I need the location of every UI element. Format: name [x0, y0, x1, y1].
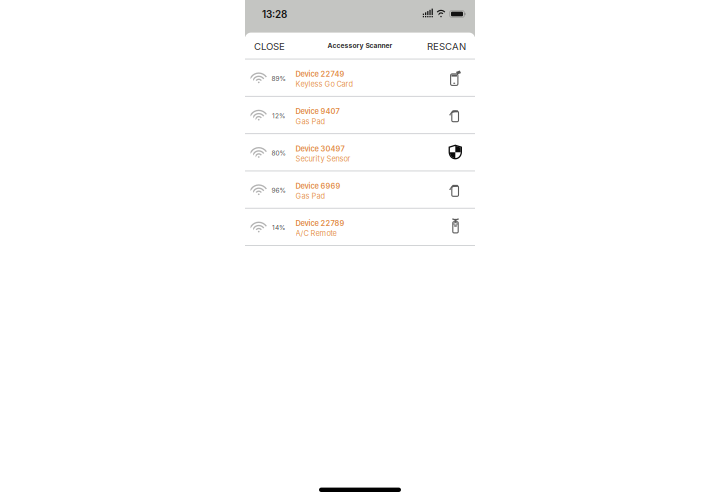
staticText: RESCAN	[427, 41, 466, 52]
staticText: 14%	[272, 224, 285, 232]
staticText: 96%	[271, 186, 285, 194]
button[interactable]: 14%	[245, 209, 475, 245]
staticText: 80%	[271, 149, 285, 157]
staticText: 89%	[271, 74, 285, 82]
staticText: Security Sensor	[295, 154, 350, 163]
staticText: Gas Pad	[295, 117, 325, 126]
button[interactable]: 80%	[245, 134, 475, 170]
staticText: Accessory Scanner	[327, 42, 392, 50]
staticText: Device 6969	[295, 181, 340, 190]
staticText: A/C Remote	[295, 229, 336, 238]
staticText: Device 22789	[295, 219, 344, 228]
staticText: 12%	[272, 112, 285, 120]
button[interactable]: 89%	[245, 59, 475, 96]
staticText: Device 22749	[295, 70, 344, 79]
staticText: Keyless Go Card	[295, 80, 353, 89]
staticText: 13:28	[262, 8, 287, 20]
button[interactable]: CLOSE	[248, 35, 291, 56]
staticText: Device 30497	[295, 144, 344, 153]
staticText: CLOSE	[254, 41, 285, 52]
button[interactable]: 12%	[245, 97, 475, 133]
staticText: Gas Pad	[295, 191, 325, 200]
button[interactable]: 96%	[245, 171, 475, 208]
staticText: Device 9407	[295, 107, 339, 116]
button[interactable]: RESCAN	[421, 35, 472, 56]
